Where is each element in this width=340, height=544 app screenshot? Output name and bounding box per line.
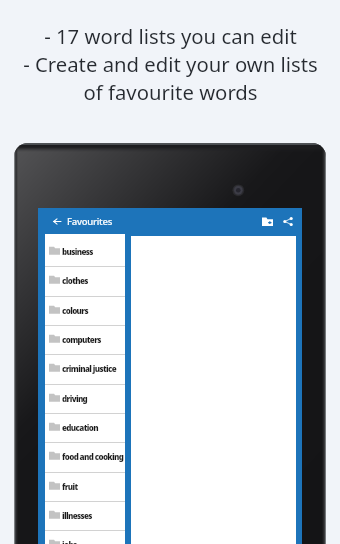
button[interactable]: computers [45, 326, 125, 354]
staticText: Favourites [67, 215, 113, 228]
button[interactable]: food and cooking [45, 443, 125, 472]
button[interactable]: jobs [45, 531, 125, 544]
staticText: - 17 word lists you can edit - Create an… [23, 22, 318, 106]
staticText: driving [62, 393, 88, 404]
button[interactable]: colours [45, 297, 125, 325]
staticText: computers [62, 334, 101, 345]
staticText: education [62, 422, 98, 433]
staticText: fruit [62, 481, 78, 492]
button[interactable]: fruit [45, 473, 125, 501]
staticText: food and cooking [62, 451, 124, 462]
button[interactable]: criminal justice [45, 355, 125, 384]
button[interactable]: Back [50, 210, 64, 232]
staticText: illnesses [62, 510, 92, 521]
button[interactable]: clothes [45, 267, 125, 296]
staticText: business [62, 246, 93, 257]
button[interactable]: Share [278, 210, 298, 232]
staticText: jobs [62, 539, 77, 544]
button[interactable]: education [45, 414, 125, 442]
button[interactable]: business [45, 238, 125, 266]
button[interactable]: driving [45, 385, 125, 413]
button[interactable]: illnesses [45, 502, 125, 530]
staticText: clothes [62, 275, 88, 286]
staticText: criminal justice [62, 363, 116, 374]
button[interactable]: New folder [257, 210, 277, 232]
staticText: colours [62, 305, 88, 316]
